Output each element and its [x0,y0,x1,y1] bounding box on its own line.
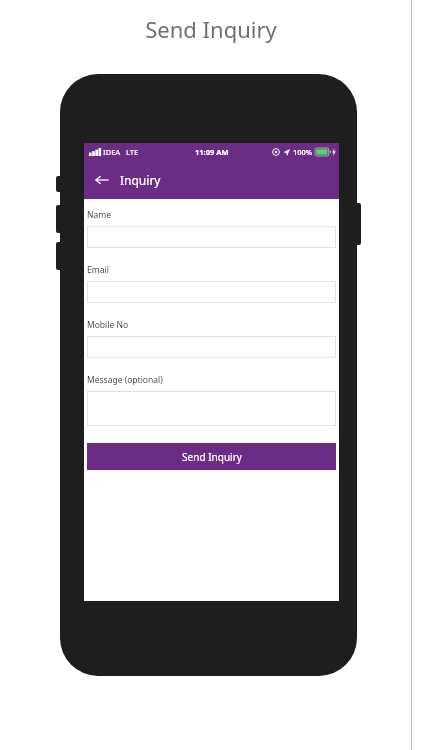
staticText: 100% [293,147,313,157]
staticText: Inquiry [120,172,161,188]
staticText: Send Inquiry [145,14,277,44]
button[interactable] [87,226,336,248]
button[interactable] [87,281,336,303]
button[interactable] [87,336,336,358]
staticText: IDEA [103,147,121,157]
button[interactable]: Send Inquiry [87,443,336,470]
staticText: Name [87,209,111,221]
staticText: Email [87,264,109,276]
staticText: 11:09 AM [195,147,229,157]
button[interactable]: Back [92,170,112,190]
button[interactable] [87,391,336,426]
staticText: Mobile No [87,319,129,331]
staticText: LTE [126,147,139,157]
staticText: Message (optional) [87,374,163,386]
staticText: Send Inquiry [182,450,242,464]
